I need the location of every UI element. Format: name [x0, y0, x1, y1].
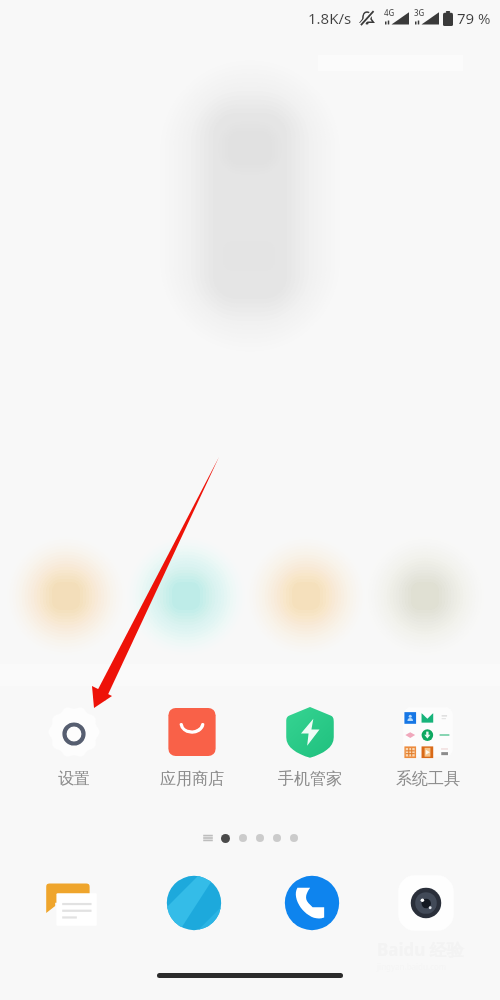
button[interactable]: 应用商店 — [133, 705, 251, 789]
button[interactable]: 设置 — [15, 705, 133, 789]
staticText: 系统工具 — [396, 769, 460, 789]
staticText: 1.8K/s — [308, 8, 352, 28]
staticText: 3G — [414, 7, 425, 18]
staticText: 应用商店 — [160, 769, 224, 789]
button[interactable]: Browser — [157, 866, 231, 940]
button[interactable]: Camera — [389, 866, 463, 940]
staticText: 79 % — [457, 8, 491, 28]
staticText: 手机管家 — [278, 769, 342, 789]
button[interactable]: Phone — [275, 866, 349, 940]
button[interactable]: 系统工具 — [369, 705, 487, 789]
button[interactable]: 手机管家 — [251, 705, 369, 789]
staticText: 4G — [384, 7, 395, 18]
button[interactable]: Messages — [42, 866, 116, 940]
staticText: 设置 — [58, 769, 90, 789]
